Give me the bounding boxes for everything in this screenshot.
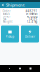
- staticText: Shipment: [6, 2, 25, 8]
- staticText: 12.4 kg: [26, 20, 37, 23]
- staticText: Deliver: [25, 35, 35, 38]
- button[interactable]: Back: [1, 3, 4, 6]
- staticText: In transit: [25, 12, 37, 16]
- button[interactable]: Deliver: [21, 25, 39, 42]
- button[interactable]: Pickup: [1, 25, 19, 42]
- staticText: Pickup: [5, 35, 14, 38]
- staticText: Driver: [2, 15, 10, 18]
- staticText: Order: [2, 9, 10, 13]
- staticText: M. Lopez: [26, 15, 37, 18]
- staticText: Weight: [2, 20, 12, 23]
- staticText: #48291: [25, 9, 37, 13]
- staticText: ETA: [2, 17, 6, 21]
- staticText: 14:25: [28, 17, 37, 21]
- staticText: Status: [2, 12, 9, 16]
